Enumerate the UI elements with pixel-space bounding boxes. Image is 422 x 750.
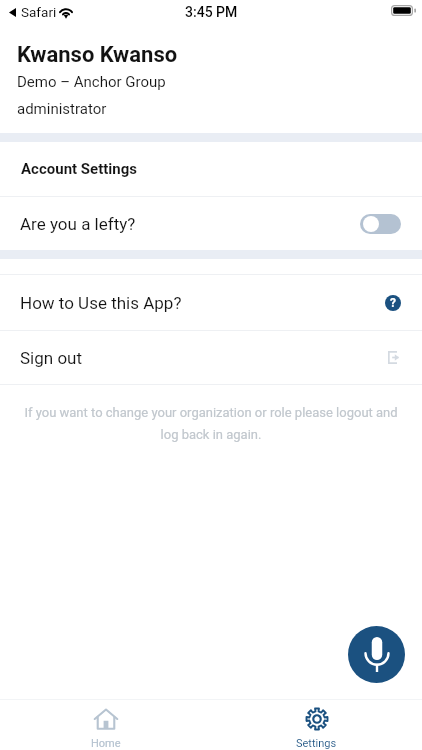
button[interactable]: Are you a lefty toggle (360, 214, 401, 234)
button[interactable]: Voice input (348, 626, 405, 683)
staticText: ? (390, 296, 396, 310)
button[interactable]: Sign out (0, 331, 422, 384)
staticText: Settings (296, 737, 337, 750)
staticText: Safari (21, 4, 57, 20)
button[interactable]: Are you a lefty? (0, 197, 422, 250)
staticText: If you want to change your organization … (22, 405, 400, 443)
staticText: Are you a lefty? (20, 214, 136, 234)
staticText: Demo – Anchor Group (17, 73, 166, 91)
staticText: 3:45 PM (185, 4, 238, 20)
button[interactable]: How to Use this App? (0, 275, 422, 330)
button[interactable]: Home (0, 700, 211, 750)
staticText: Account Settings (21, 160, 137, 178)
other: Sign out (388, 351, 399, 364)
button[interactable]: Settings (211, 700, 422, 750)
staticText: How to Use this App? (20, 293, 182, 313)
other: Help (385, 295, 401, 311)
staticText: administrator (17, 100, 107, 118)
staticText: Home (91, 737, 121, 750)
staticText: Sign out (20, 348, 83, 368)
staticText: Kwanso Kwanso (17, 42, 178, 68)
